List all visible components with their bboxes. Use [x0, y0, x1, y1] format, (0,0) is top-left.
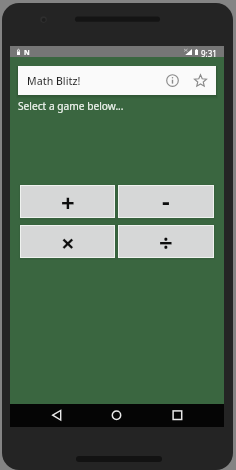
staticText: × [61, 226, 75, 257]
staticText: - [162, 184, 170, 215]
button[interactable]: Favorite [186, 66, 214, 95]
button[interactable]: + [21, 186, 114, 217]
staticText: ÷ [159, 226, 173, 257]
staticText: 9:31 [201, 48, 217, 59]
staticText: Math Blitz! [27, 74, 81, 88]
button[interactable]: - [119, 186, 213, 217]
staticText: N [24, 48, 30, 58]
staticText: Select a game below... [18, 99, 124, 113]
button[interactable]: ÷ [119, 226, 213, 257]
staticText: + [61, 186, 75, 217]
button[interactable]: × [21, 226, 114, 257]
button[interactable]: Info [158, 66, 186, 95]
